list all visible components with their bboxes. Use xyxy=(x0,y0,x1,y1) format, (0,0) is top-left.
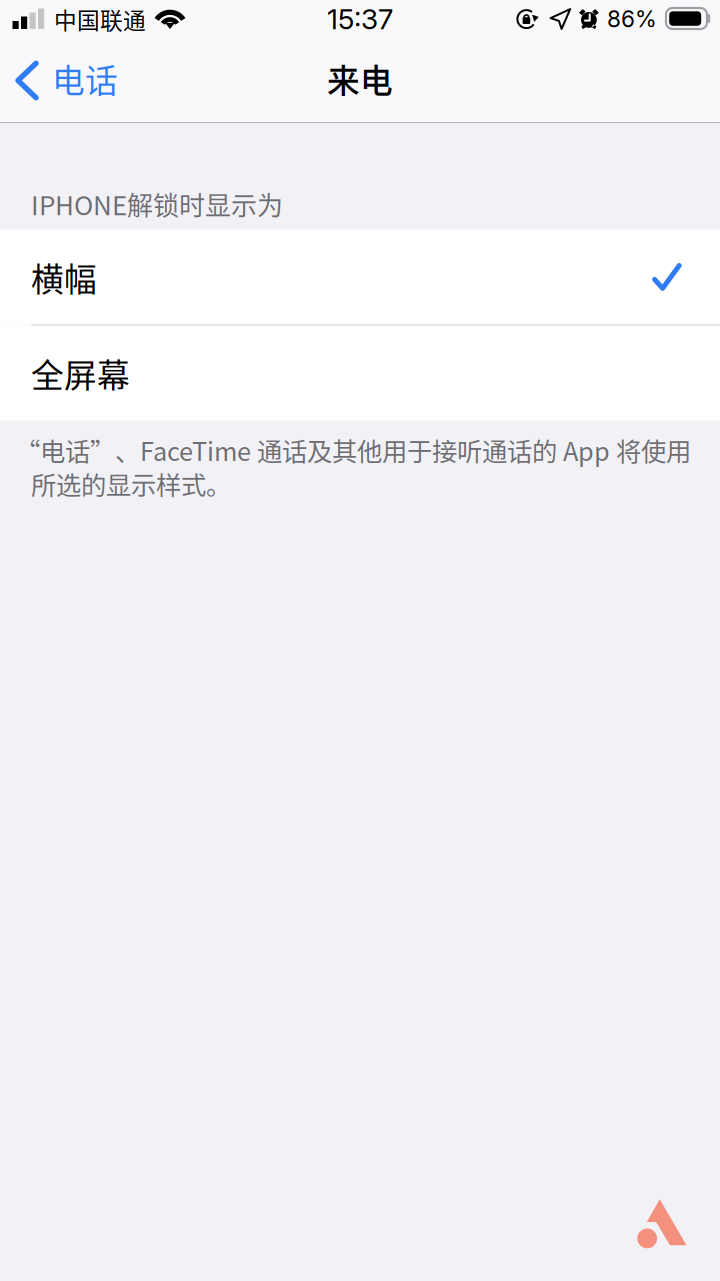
staticText: 86% xyxy=(607,5,657,33)
staticText: 所选的显示样式。 xyxy=(31,465,231,502)
staticText: 来电 xyxy=(327,55,393,102)
staticText: 横幅 xyxy=(31,253,97,301)
staticText: “电话”、FaceTime 通话及其他用于接听通话的 App 将使用 xyxy=(15,432,691,468)
staticText: 中国联通 xyxy=(54,3,146,35)
staticText: 电话 xyxy=(52,55,118,102)
button[interactable]: 横幅 xyxy=(0,230,720,325)
button[interactable]: 全屏幕 xyxy=(0,326,720,421)
staticText: IPHONE解锁时显示为 xyxy=(31,185,283,223)
staticText: 全屏幕 xyxy=(31,349,130,397)
staticText: 15:37 xyxy=(327,2,393,36)
button[interactable]: 电话 xyxy=(0,38,720,123)
